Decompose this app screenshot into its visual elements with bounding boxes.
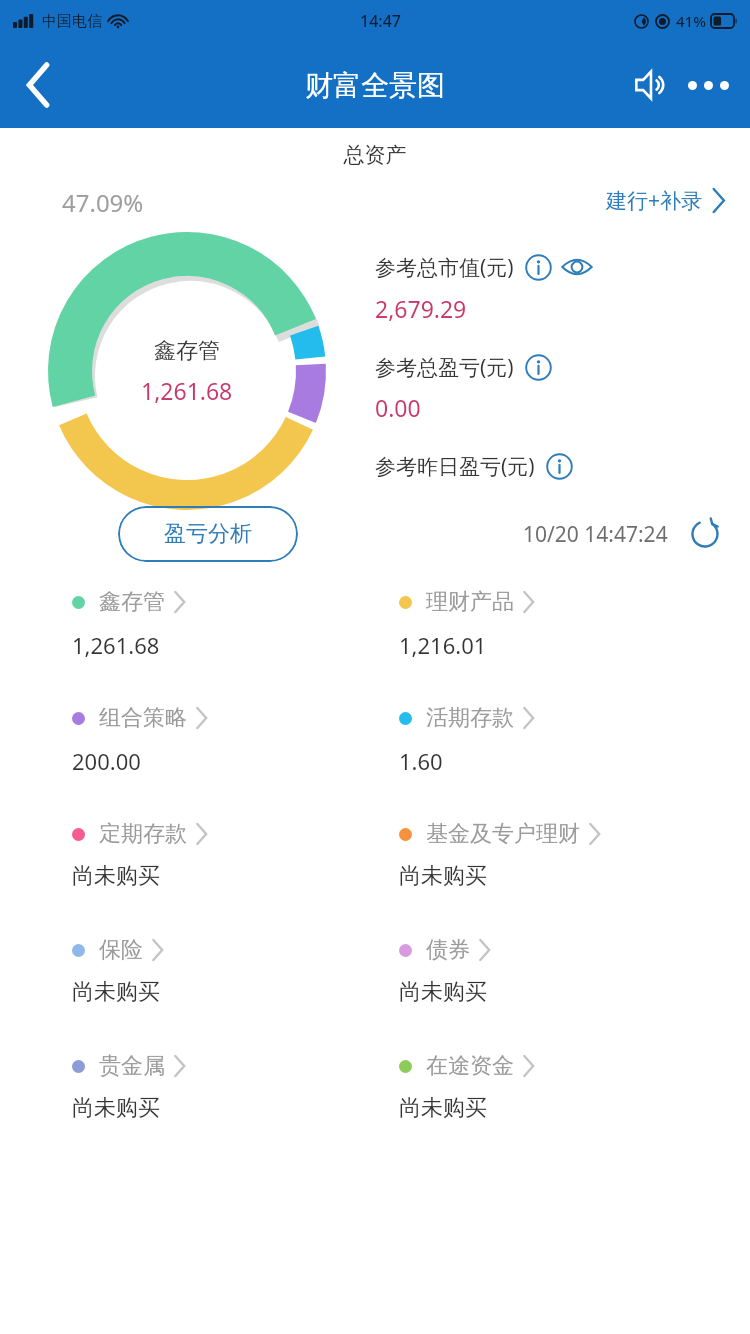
button[interactable]: Toggle visibility [561,251,593,283]
staticText: 14:47 [360,10,401,32]
button[interactable]: Info [544,451,574,481]
staticText: 尚未购买 [399,862,487,890]
button[interactable]: 贵金属 [72,1052,375,1168]
button[interactable]: 定期存款 [72,820,375,936]
staticText: 0.00 [375,392,421,423]
staticText: 理财产品 [426,588,514,616]
staticText: 鑫存管 [99,588,165,616]
button[interactable]: 债券 [399,936,750,1052]
staticText: 活期存款 [426,704,514,732]
staticText: 组合策略 [99,704,187,732]
staticText: 47.09% [62,186,144,219]
staticText: 尚未购买 [72,978,160,1006]
staticText: 基金及专户理财 [426,820,580,848]
staticText: 财富全景图 [305,68,445,103]
staticText: 1,261.68 [72,630,160,660]
staticText: 2,679.29 [375,293,467,324]
staticText: 尚未购买 [399,978,487,1006]
staticText: 定期存款 [99,820,187,848]
button[interactable]: 基金及专户理财 [399,820,750,936]
button[interactable]: 盈亏分析 [118,506,298,562]
staticText: 200.00 [72,746,141,776]
staticText: 总资产 [0,142,750,168]
staticText: 参考昨日盈亏(元) [375,452,535,481]
button[interactable]: 理财产品 [399,588,750,704]
button[interactable]: 在途资金 [399,1052,750,1168]
button[interactable]: More [680,57,736,113]
staticText: 中国电信 [42,12,102,31]
staticText: 在途资金 [426,1052,514,1080]
staticText: 41% [676,11,706,31]
button[interactable]: Info [523,252,553,282]
staticText: 盈亏分析 [164,520,252,548]
staticText: 债券 [426,936,470,964]
staticText: 10/20 14:47:24 [523,520,668,549]
staticText: 建行+补录 [606,186,703,215]
staticText: 尚未购买 [72,862,160,890]
button[interactable]: Back [8,54,70,116]
staticText: 鑫存管 [154,337,220,365]
staticText: 贵金属 [99,1052,165,1080]
button[interactable]: 鑫存管 [72,588,375,704]
staticText: 尚未购买 [399,1094,487,1122]
button[interactable]: 活期存款 [399,704,750,820]
staticText: 保险 [99,936,143,964]
button[interactable]: 建行+补录 [606,186,726,215]
staticText: 1,216.01 [399,630,487,660]
button[interactable]: 组合策略 [72,704,375,820]
button[interactable]: Refresh [684,513,726,555]
button[interactable]: Asset distribution chart [22,216,352,526]
button[interactable]: Info [523,352,553,382]
staticText: 尚未购买 [72,1094,160,1122]
staticText: 参考总盈亏(元) [375,353,514,382]
button[interactable]: 保险 [72,936,375,1052]
staticText: 1.60 [399,746,443,776]
staticText: 参考总市值(元) [375,253,514,282]
button[interactable]: Sound [624,57,680,113]
staticText: 1,261.68 [141,375,233,406]
